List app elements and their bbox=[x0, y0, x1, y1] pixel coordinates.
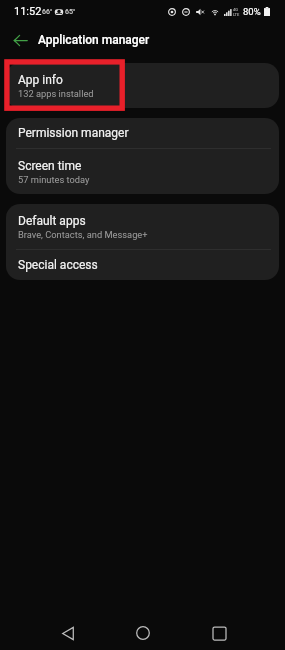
staticText: 65° bbox=[65, 8, 76, 16]
staticText: Special access bbox=[18, 258, 98, 272]
button[interactable]: Special access bbox=[6, 250, 279, 280]
staticText: 80% bbox=[243, 6, 261, 17]
staticText: Permission manager bbox=[18, 126, 129, 140]
staticText: 66° bbox=[42, 8, 53, 16]
button[interactable]: Screen time bbox=[6, 149, 279, 194]
staticText: Default apps bbox=[18, 214, 86, 228]
button[interactable]: Recents bbox=[201, 616, 237, 650]
button[interactable]: Home bbox=[125, 616, 161, 650]
staticText: 132 apps installed bbox=[18, 88, 94, 99]
staticText: 4G LTE bbox=[233, 7, 240, 17]
button[interactable]: Back bbox=[50, 616, 86, 650]
button[interactable]: Permission manager bbox=[6, 118, 279, 148]
button[interactable]: Default apps bbox=[6, 204, 279, 249]
staticText: Application manager bbox=[38, 33, 150, 47]
staticText: 11:52 bbox=[14, 5, 42, 18]
staticText: 57 minutes today bbox=[18, 174, 90, 185]
staticText: Screen time bbox=[18, 159, 82, 173]
staticText: App info bbox=[18, 73, 63, 87]
staticText: Brave, Contacts, and Message+ bbox=[18, 229, 148, 240]
button[interactable]: Back bbox=[4, 24, 36, 56]
button[interactable]: App info bbox=[6, 63, 279, 108]
